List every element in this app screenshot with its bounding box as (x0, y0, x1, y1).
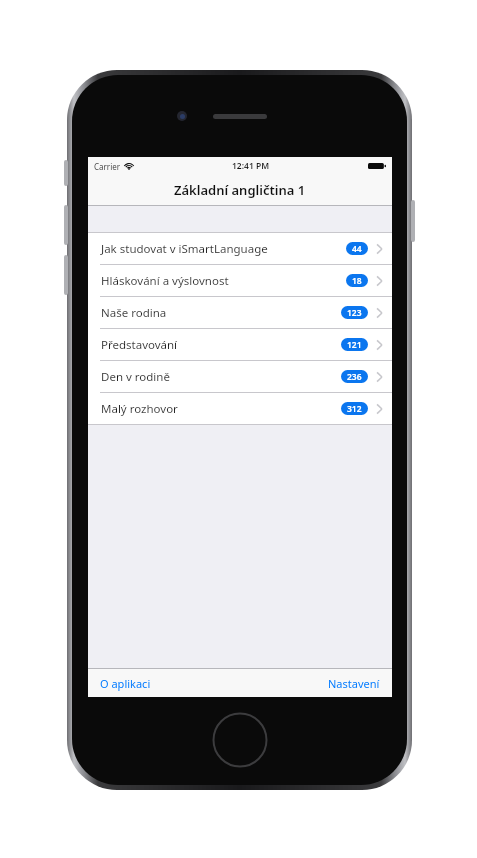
button[interactable]: Nastavení (316, 671, 392, 696)
staticText: Carrier (94, 161, 121, 172)
staticText: 44 (352, 243, 362, 255)
button[interactable]: O aplikaci (88, 671, 163, 696)
button[interactable]: Den v rodině (88, 361, 392, 392)
staticText: Malý rozhovor (101, 401, 178, 417)
staticText: Nastavení (328, 676, 380, 691)
button[interactable]: Malý rozhovor (88, 393, 392, 424)
staticText: Jak studovat v iSmartLanguage (101, 241, 268, 257)
staticText: Den v rodině (101, 369, 170, 385)
staticText: O aplikaci (100, 676, 151, 691)
staticText: 121 (347, 339, 362, 351)
staticText: 236 (347, 371, 362, 383)
button[interactable]: Hláskování a výslovnost (88, 265, 392, 296)
button[interactable]: Jak studovat v iSmartLanguage (88, 233, 392, 264)
staticText: Hláskování a výslovnost (101, 273, 229, 289)
staticText: 312 (347, 403, 362, 415)
staticText: Naše rodina (101, 305, 167, 321)
staticText: Základní angličtina 1 (174, 181, 306, 199)
staticText: 12:41 PM (232, 160, 270, 172)
staticText: 18 (352, 275, 362, 287)
staticText: Představování (101, 337, 178, 353)
staticText: 123 (347, 307, 362, 319)
button[interactable]: Naše rodina (88, 297, 392, 328)
button[interactable]: Představování (88, 329, 392, 360)
